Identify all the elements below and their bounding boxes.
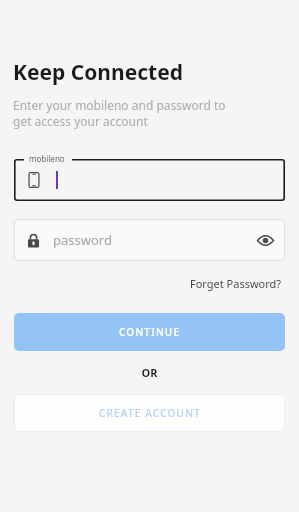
staticText: password (53, 231, 249, 249)
button[interactable]: Forget Password? (188, 274, 284, 293)
staticText: Enter your mobileno and password to get … (13, 97, 226, 130)
staticText: CREATE ACCOUNT (99, 406, 201, 420)
button[interactable]: CONTINUE (14, 313, 285, 351)
staticText: CONTINUE (119, 325, 181, 339)
staticText: OR (0, 365, 299, 380)
button[interactable]: password (14, 219, 285, 261)
button[interactable]: Show password (249, 224, 281, 256)
staticText: Forget Password? (190, 276, 282, 291)
staticText: Keep Connected (13, 58, 183, 87)
button[interactable]: mobileno (14, 159, 285, 201)
button[interactable]: CREATE ACCOUNT (14, 394, 285, 432)
staticText: mobileno (29, 153, 65, 164)
